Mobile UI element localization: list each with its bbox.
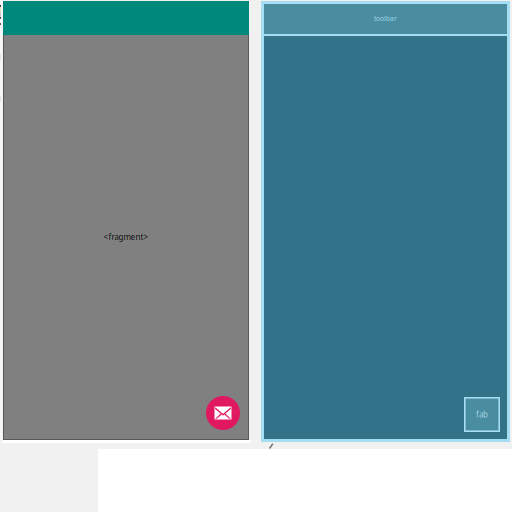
staticText: toolbar	[374, 14, 397, 23]
staticText: <fragment>	[103, 232, 148, 242]
button[interactable]: toolbar	[261, 1, 510, 34]
button[interactable]: Compose message	[206, 396, 240, 430]
staticText: fab	[476, 409, 488, 420]
button[interactable]: fab	[464, 397, 500, 432]
